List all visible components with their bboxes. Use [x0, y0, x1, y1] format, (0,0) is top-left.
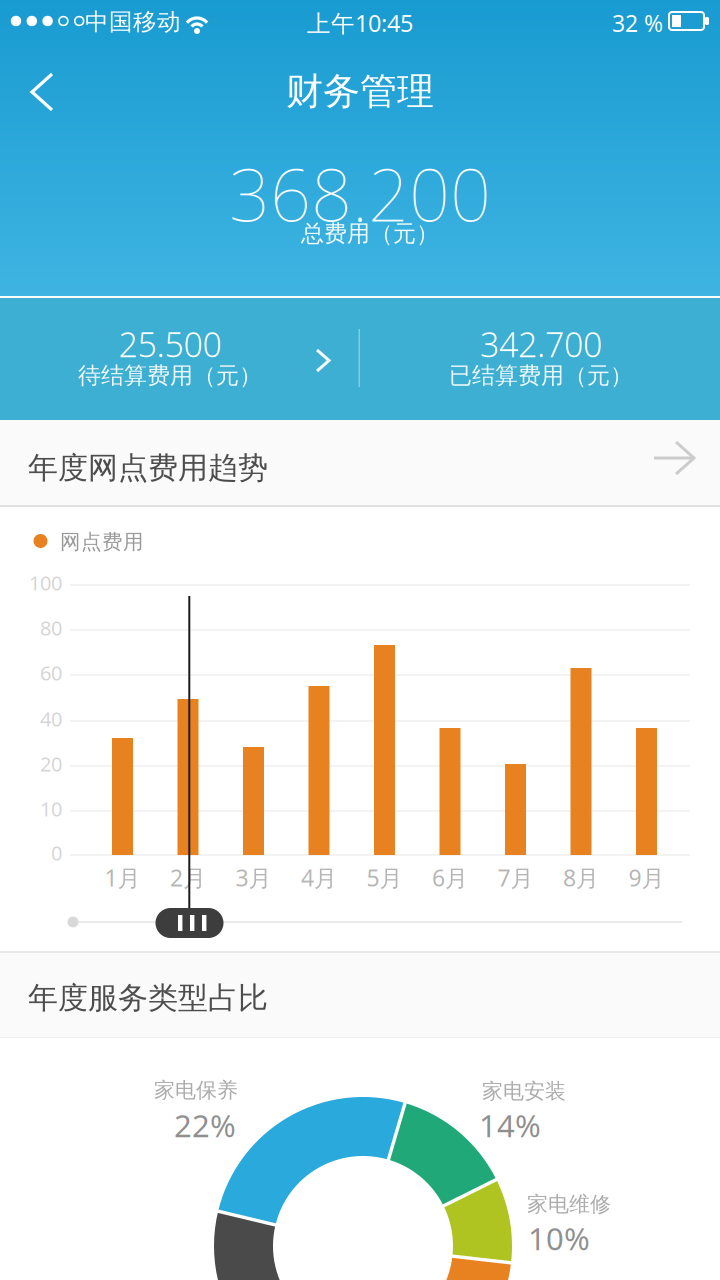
- staticText: 年度网点费用趋势: [28, 449, 268, 487]
- staticText: 7月: [497, 862, 533, 893]
- staticText: 2月: [170, 862, 206, 893]
- staticText: 80: [40, 614, 62, 641]
- staticText: 368.200: [229, 145, 491, 242]
- staticText: 1月: [104, 862, 140, 893]
- button[interactable]: 返回: [0, 44, 84, 140]
- staticText: 0: [51, 839, 62, 866]
- staticText: 财务管理: [286, 68, 434, 115]
- staticText: 总费用（元）: [301, 219, 439, 248]
- button[interactable]: 25.500: [0, 298, 720, 420]
- staticText: 32 %: [612, 7, 663, 39]
- staticText: 22%: [174, 1104, 236, 1146]
- staticText: 10%: [528, 1217, 590, 1259]
- staticText: 60: [40, 659, 62, 686]
- staticText: 40: [40, 705, 62, 732]
- staticText: 100: [29, 569, 62, 596]
- staticText: 9月: [628, 862, 664, 893]
- staticText: 5月: [366, 862, 402, 893]
- staticText: 上午10:45: [307, 7, 413, 39]
- staticText: 年度服务类型占比: [28, 979, 268, 1017]
- staticText: 家电维修: [527, 1191, 611, 1217]
- staticText: 中国移动: [85, 7, 181, 37]
- staticText: 342.700: [480, 321, 602, 367]
- staticText: 20: [40, 750, 62, 777]
- staticText: 网点费用: [60, 529, 144, 555]
- staticText: 已结算费用（元）: [449, 361, 633, 390]
- staticText: 待结算费用（元）: [78, 361, 262, 390]
- staticText: 8月: [563, 862, 599, 893]
- button[interactable]: 年度网点费用趋势: [0, 420, 720, 507]
- button[interactable]: 拖动: [155, 908, 223, 938]
- staticText: 4月: [301, 862, 337, 893]
- staticText: 25.500: [118, 321, 221, 367]
- staticText: 14%: [479, 1104, 541, 1146]
- staticText: 家电保养: [154, 1077, 238, 1103]
- staticText: 6月: [432, 862, 468, 893]
- staticText: 3月: [235, 862, 271, 893]
- staticText: 家电安装: [482, 1078, 566, 1104]
- staticText: 10: [40, 795, 62, 822]
